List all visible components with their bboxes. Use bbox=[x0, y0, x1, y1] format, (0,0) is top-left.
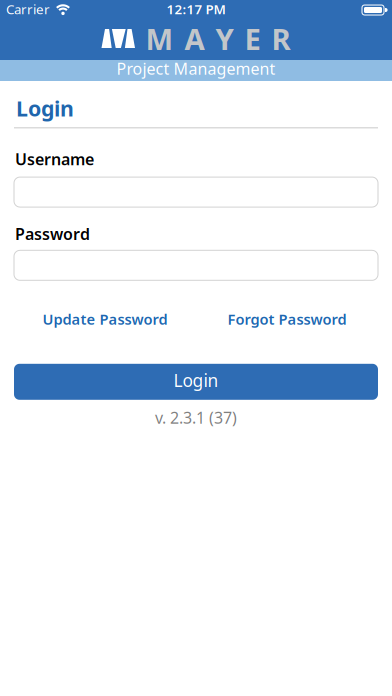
button[interactable]: Password bbox=[14, 250, 378, 280]
staticText: M bbox=[145, 19, 173, 58]
staticText: R bbox=[271, 19, 290, 58]
staticText: Update Password bbox=[42, 309, 167, 329]
staticText: Login bbox=[173, 369, 218, 392]
staticText: E bbox=[244, 19, 260, 58]
button[interactable]: Login bbox=[14, 364, 378, 400]
staticText: Y bbox=[215, 19, 233, 58]
staticText: Password bbox=[15, 223, 90, 244]
staticText: Forgot Password bbox=[227, 309, 346, 329]
staticText: 12:17 PM bbox=[166, 0, 225, 18]
staticText: Carrier bbox=[6, 0, 50, 18]
staticText: Project Management bbox=[116, 58, 275, 79]
staticText: A bbox=[184, 19, 204, 58]
staticText: v. 2.3.1 (37) bbox=[155, 407, 237, 428]
staticText: Login bbox=[16, 94, 74, 122]
button[interactable]: Update Password bbox=[42, 309, 167, 329]
button[interactable]: Forgot Password bbox=[227, 309, 346, 329]
button[interactable]: Username bbox=[14, 177, 378, 207]
staticText: Username bbox=[15, 148, 94, 169]
